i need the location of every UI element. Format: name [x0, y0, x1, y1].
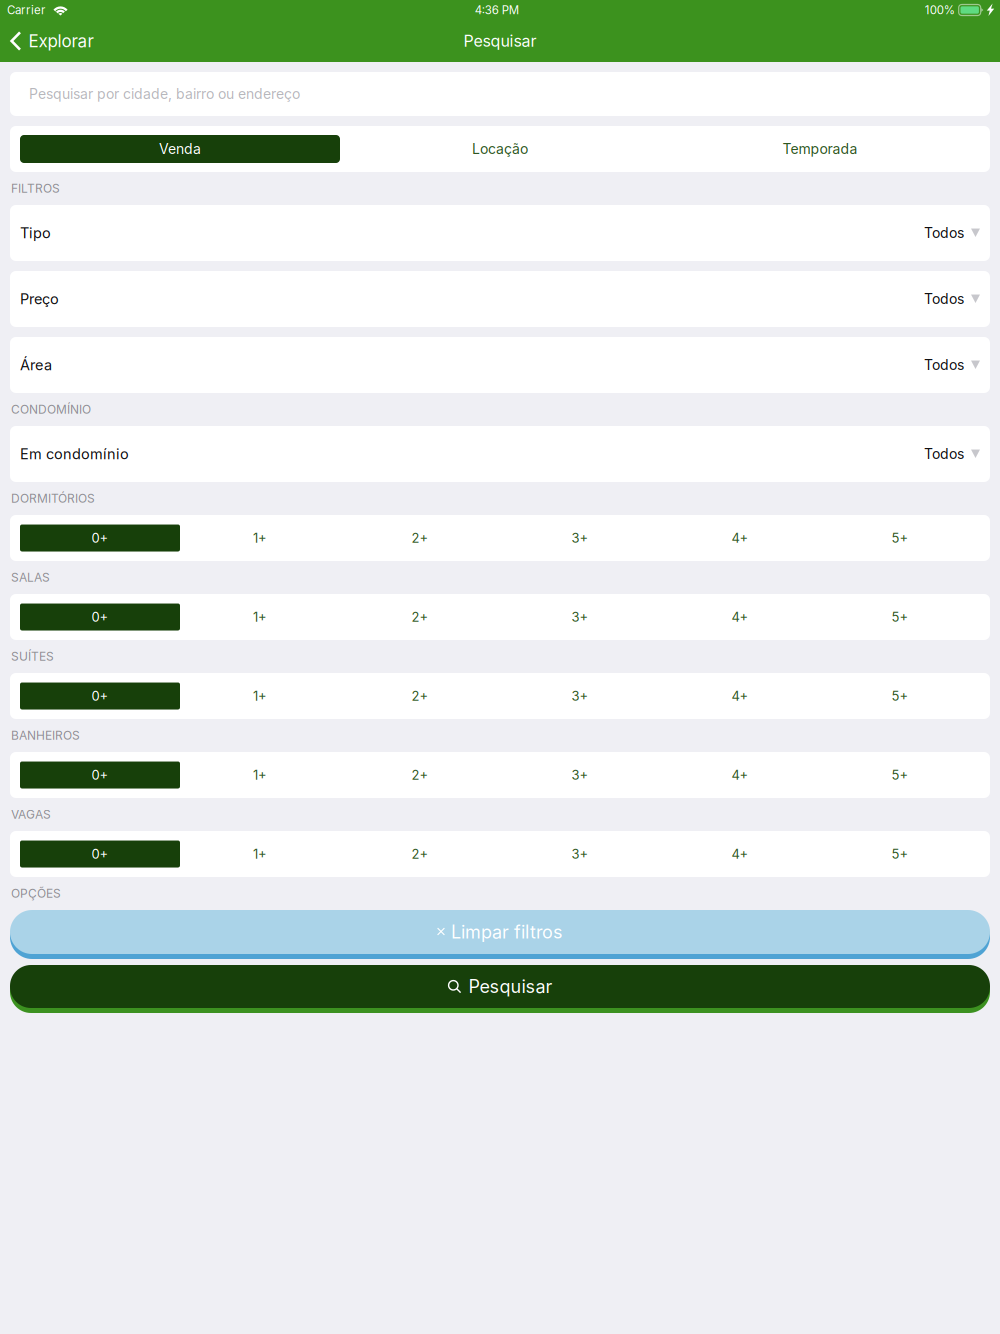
button[interactable]: 3+: [500, 524, 660, 551]
staticText: 5+: [891, 688, 908, 704]
button[interactable]: Pesquisar por cidade, bairro ou endereço: [0, 72, 1000, 116]
button[interactable]: 0+: [20, 682, 180, 709]
button[interactable]: 5+: [820, 603, 980, 630]
staticText: 1+: [253, 688, 267, 704]
staticText: Tipo: [20, 224, 51, 242]
staticText: 5+: [891, 530, 908, 546]
staticText: 4+: [731, 767, 748, 783]
staticText: 3+: [571, 688, 588, 704]
button[interactable]: 0+: [20, 524, 180, 551]
staticText: 4+: [731, 688, 748, 704]
staticText: 100%: [925, 3, 955, 17]
staticText: Todos: [924, 356, 964, 373]
button[interactable]: 4+: [660, 682, 820, 709]
button[interactable]: 2+: [340, 682, 500, 709]
button[interactable]: 3+: [500, 682, 660, 709]
staticText: 5+: [891, 609, 908, 625]
button[interactable]: 5+: [820, 840, 980, 867]
staticText: 0+: [91, 530, 108, 546]
staticText: 0+: [91, 846, 108, 862]
staticText: DORMITÓRIOS: [11, 491, 95, 506]
button[interactable]: 1+: [180, 682, 340, 709]
staticText: 3+: [571, 530, 588, 546]
button[interactable]: Tipo: [0, 205, 1000, 261]
staticText: 0+: [91, 688, 108, 704]
button[interactable]: 2+: [340, 840, 500, 867]
staticText: 2+: [411, 530, 428, 546]
staticText: Pesquisar: [463, 31, 536, 51]
button[interactable]: 3+: [500, 761, 660, 788]
button[interactable]: Explorar: [0, 20, 103, 62]
button[interactable]: 0+: [20, 840, 180, 867]
button[interactable]: 3+: [500, 603, 660, 630]
staticText: Explorar: [28, 31, 93, 51]
button[interactable]: Venda: [20, 135, 340, 163]
staticText: 0+: [91, 609, 108, 625]
button[interactable]: 1+: [180, 524, 340, 551]
button[interactable]: 1+: [180, 603, 340, 630]
button[interactable]: 4+: [660, 840, 820, 867]
staticText: 1+: [253, 846, 267, 862]
staticText: 1+: [253, 530, 267, 546]
staticText: Venda: [159, 140, 201, 157]
staticText: BANHEIROS: [11, 728, 80, 743]
staticText: 3+: [571, 846, 588, 862]
staticText: Temporada: [782, 140, 857, 157]
button[interactable]: 4+: [660, 524, 820, 551]
staticText: 2+: [411, 688, 428, 704]
staticText: 2+: [411, 846, 428, 862]
button[interactable]: Área: [0, 337, 1000, 393]
button[interactable]: 2+: [340, 524, 500, 551]
staticText: Carrier: [7, 3, 45, 17]
staticText: Pesquisar: [468, 976, 552, 997]
staticText: Todos: [924, 290, 964, 307]
staticText: 3+: [571, 767, 588, 783]
button[interactable]: Temporada: [660, 135, 980, 163]
button[interactable]: Em condomínio: [0, 426, 1000, 482]
button[interactable]: 5+: [820, 524, 980, 551]
button[interactable]: 4+: [660, 603, 820, 630]
staticText: FILTROS: [11, 181, 60, 196]
staticText: Limpar filtros: [451, 921, 563, 943]
staticText: 2+: [411, 767, 428, 783]
button[interactable]: 2+: [340, 603, 500, 630]
button[interactable]: 1+: [180, 840, 340, 867]
button[interactable]: 3+: [500, 840, 660, 867]
staticText: 1+: [253, 767, 267, 783]
staticText: 4+: [731, 530, 748, 546]
button[interactable]: Limpar filtros: [0, 910, 1000, 959]
staticText: 4:36 PM: [475, 3, 519, 17]
button[interactable]: Pesquisar: [0, 965, 1000, 1013]
button[interactable]: 0+: [20, 603, 180, 630]
staticText: VAGAS: [11, 807, 51, 822]
staticText: OPÇÕES: [11, 886, 61, 901]
button[interactable]: Preço: [0, 271, 1000, 327]
staticText: 0+: [91, 767, 108, 783]
staticText: SALAS: [11, 570, 50, 585]
staticText: Locação: [472, 140, 528, 157]
staticText: 3+: [571, 609, 588, 625]
staticText: Pesquisar por cidade, bairro ou endereço: [29, 85, 300, 102]
staticText: SUÍTES: [11, 649, 54, 664]
staticText: 1+: [253, 609, 267, 625]
staticText: 2+: [411, 609, 428, 625]
staticText: Todos: [924, 224, 964, 241]
staticText: Todos: [924, 445, 964, 462]
button[interactable]: 2+: [340, 761, 500, 788]
staticText: Em condomínio: [20, 445, 129, 463]
staticText: 5+: [891, 767, 908, 783]
staticText: CONDOMÍNIO: [11, 402, 91, 417]
button[interactable]: 0+: [20, 761, 180, 788]
button[interactable]: 5+: [820, 761, 980, 788]
staticText: Área: [20, 356, 52, 374]
staticText: 5+: [891, 846, 908, 862]
button[interactable]: 4+: [660, 761, 820, 788]
staticText: 4+: [731, 846, 748, 862]
button[interactable]: 5+: [820, 682, 980, 709]
button[interactable]: Locação: [340, 135, 660, 163]
button[interactable]: 1+: [180, 761, 340, 788]
staticText: Preço: [20, 290, 59, 308]
staticText: 4+: [731, 609, 748, 625]
